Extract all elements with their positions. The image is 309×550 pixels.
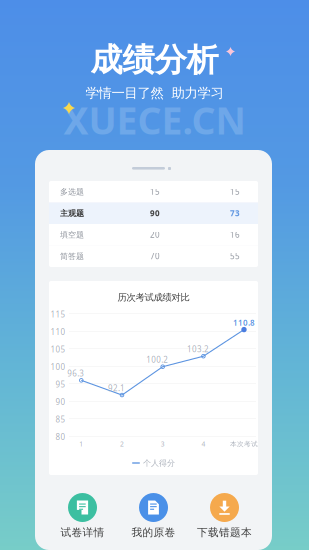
staticText: 多选题 bbox=[60, 187, 84, 197]
staticText: 100.2 bbox=[146, 354, 168, 365]
staticText: 本次考试 bbox=[230, 440, 258, 448]
staticText: XUECE.CN bbox=[63, 95, 245, 145]
staticText: 2 bbox=[120, 440, 124, 448]
staticText: 主观题 bbox=[60, 208, 84, 218]
staticText: 70 bbox=[150, 251, 160, 261]
staticText: 16 bbox=[230, 229, 240, 240]
staticText: 110.8 bbox=[233, 317, 255, 328]
staticText: 我的原卷 bbox=[131, 526, 175, 539]
staticText: 90 bbox=[150, 208, 160, 218]
button[interactable]: 试卷详情 bbox=[47, 493, 118, 538]
staticText: 20 bbox=[150, 229, 160, 240]
staticText: 历次考试成绩对比 bbox=[117, 292, 189, 303]
staticText: 80 bbox=[55, 432, 65, 442]
staticText: 95 bbox=[55, 379, 65, 390]
staticText: 4 bbox=[201, 440, 205, 448]
staticText: 115 bbox=[50, 309, 65, 320]
staticText: 55 bbox=[230, 251, 240, 261]
staticText: 成绩分析 bbox=[90, 40, 218, 80]
staticText: 学情一目了然 助力学习 bbox=[85, 85, 223, 101]
staticText: 15 bbox=[230, 186, 240, 197]
staticText: 103.2 bbox=[187, 344, 209, 354]
staticText: 110 bbox=[50, 327, 65, 337]
staticText: 85 bbox=[55, 414, 65, 425]
staticText: 15 bbox=[150, 186, 160, 197]
staticText: 简答题 bbox=[60, 251, 84, 261]
staticText: 试卷详情 bbox=[60, 526, 104, 539]
staticText: 1 bbox=[79, 440, 83, 448]
button[interactable]: 下载错题本 bbox=[189, 493, 260, 538]
staticText: 3 bbox=[161, 440, 165, 448]
staticText: 100 bbox=[50, 362, 65, 372]
staticText: 填空题 bbox=[60, 230, 84, 240]
staticText: 105 bbox=[50, 344, 65, 355]
button[interactable]: 我的原卷 bbox=[118, 493, 189, 538]
staticText: 个人得分 bbox=[143, 458, 175, 468]
staticText: 96.3 bbox=[67, 368, 84, 379]
staticText: 73 bbox=[230, 208, 240, 218]
staticText: 90 bbox=[55, 397, 65, 407]
staticText: 下载错题本 bbox=[197, 526, 252, 539]
staticText: 92.1 bbox=[108, 383, 125, 393]
